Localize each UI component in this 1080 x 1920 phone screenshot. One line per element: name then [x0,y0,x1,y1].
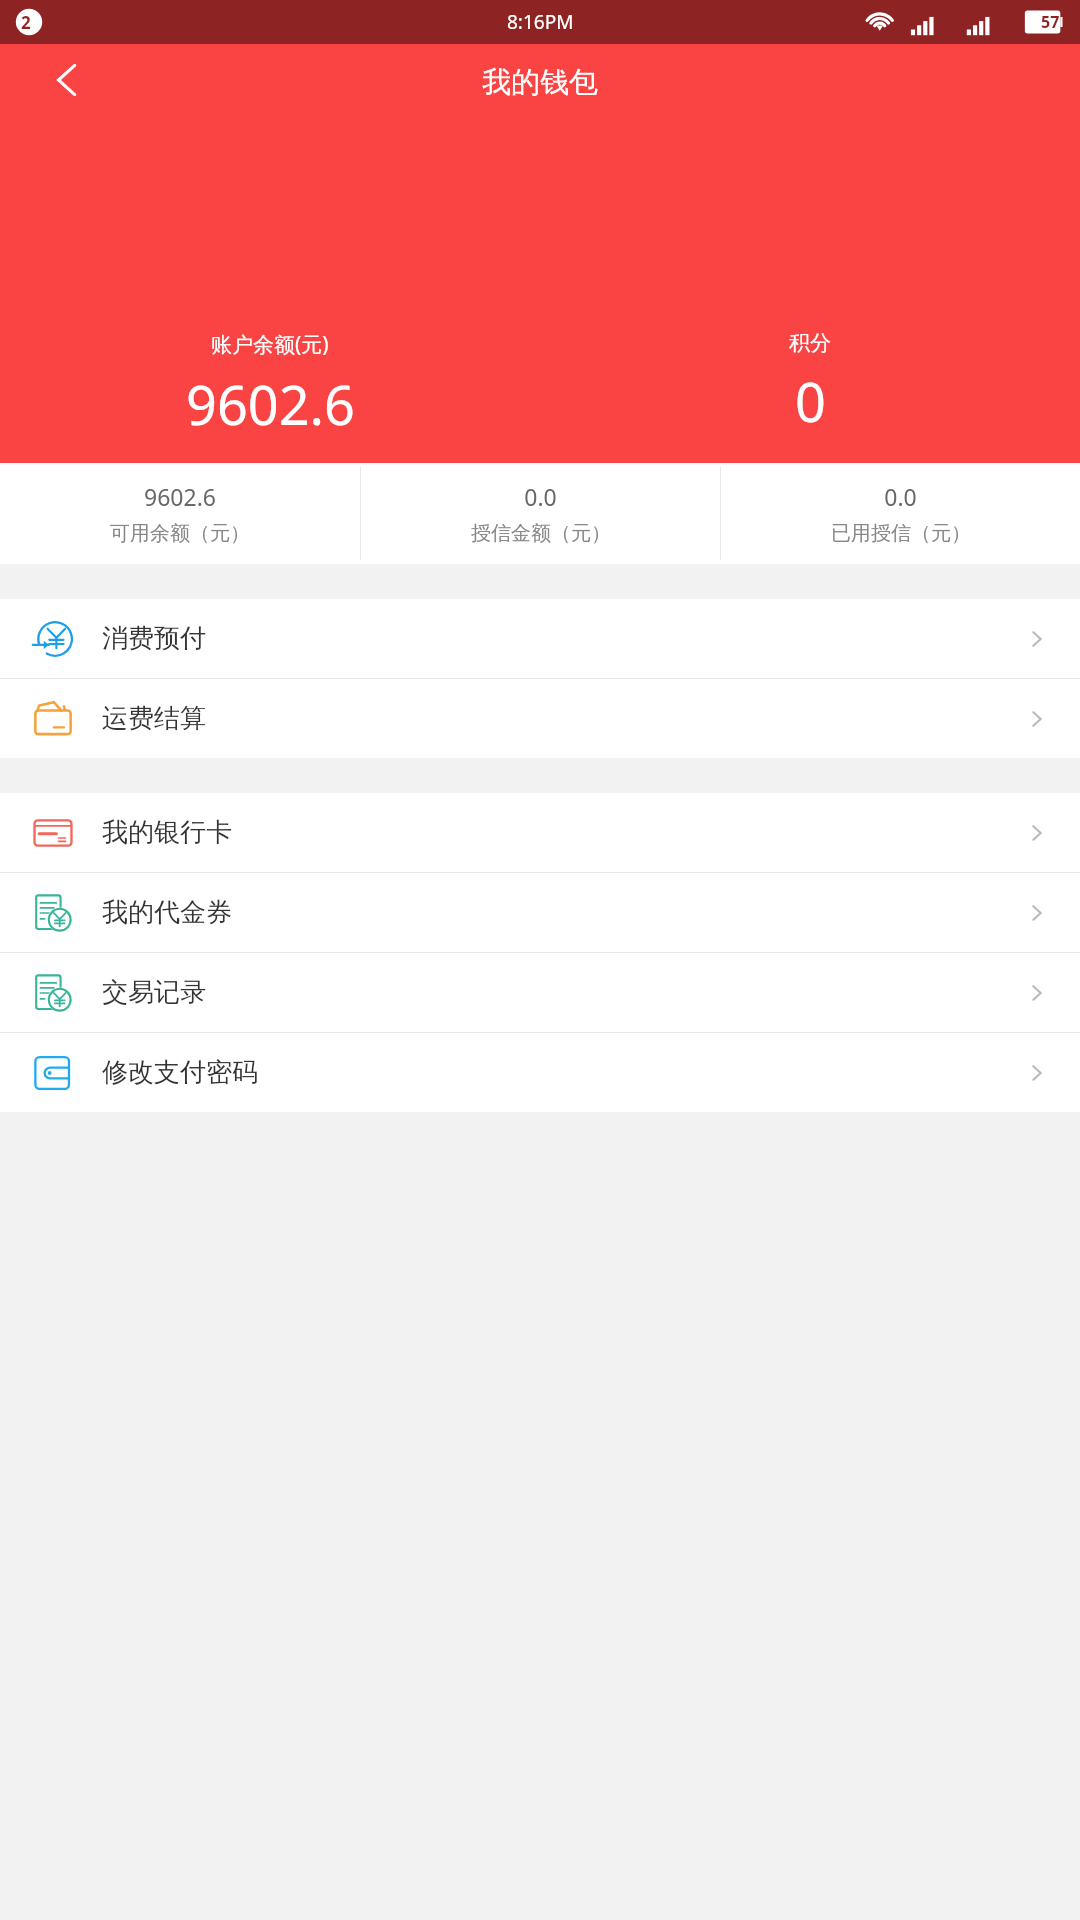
staticText: 0.0 [884,481,917,512]
staticText: 9602.6 [186,367,355,441]
button[interactable]: 9602.6 [0,463,360,564]
staticText: 0.0 [524,481,557,512]
staticText: 8:16PM [507,9,574,35]
staticText: 授信金额（元） [471,521,611,546]
button[interactable]: 0.0 [361,463,720,564]
staticText: 账户余额(元) [211,330,329,359]
staticText: 57 [1041,11,1060,33]
staticText: 我的银行卡 [102,816,232,849]
button[interactable]: 我的代金券 [0,873,1080,952]
button[interactable]: 交易记录 [0,953,1080,1032]
staticText: 0 [795,364,826,438]
staticText: 2 [21,11,31,34]
staticText: 运费结算 [102,702,206,735]
button[interactable]: 修改支付密码 [0,1033,1080,1112]
button[interactable]: 0.0 [721,463,1080,564]
staticText: 9602.6 [144,481,216,512]
staticText: 我的代金券 [102,896,232,929]
staticText: 已用授信（元） [831,521,971,546]
staticText: 消费预付 [102,622,206,655]
staticText: 可用余额（元） [110,521,250,546]
staticText: 积分 [789,330,831,356]
button[interactable]: Back [40,52,96,108]
button[interactable]: 消费预付 [0,599,1080,678]
button[interactable]: 运费结算 [0,679,1080,758]
staticText: 修改支付密码 [102,1056,258,1089]
button[interactable]: 我的银行卡 [0,793,1080,872]
staticText: 交易记录 [102,976,206,1009]
staticText: 我的钱包 [482,64,598,101]
